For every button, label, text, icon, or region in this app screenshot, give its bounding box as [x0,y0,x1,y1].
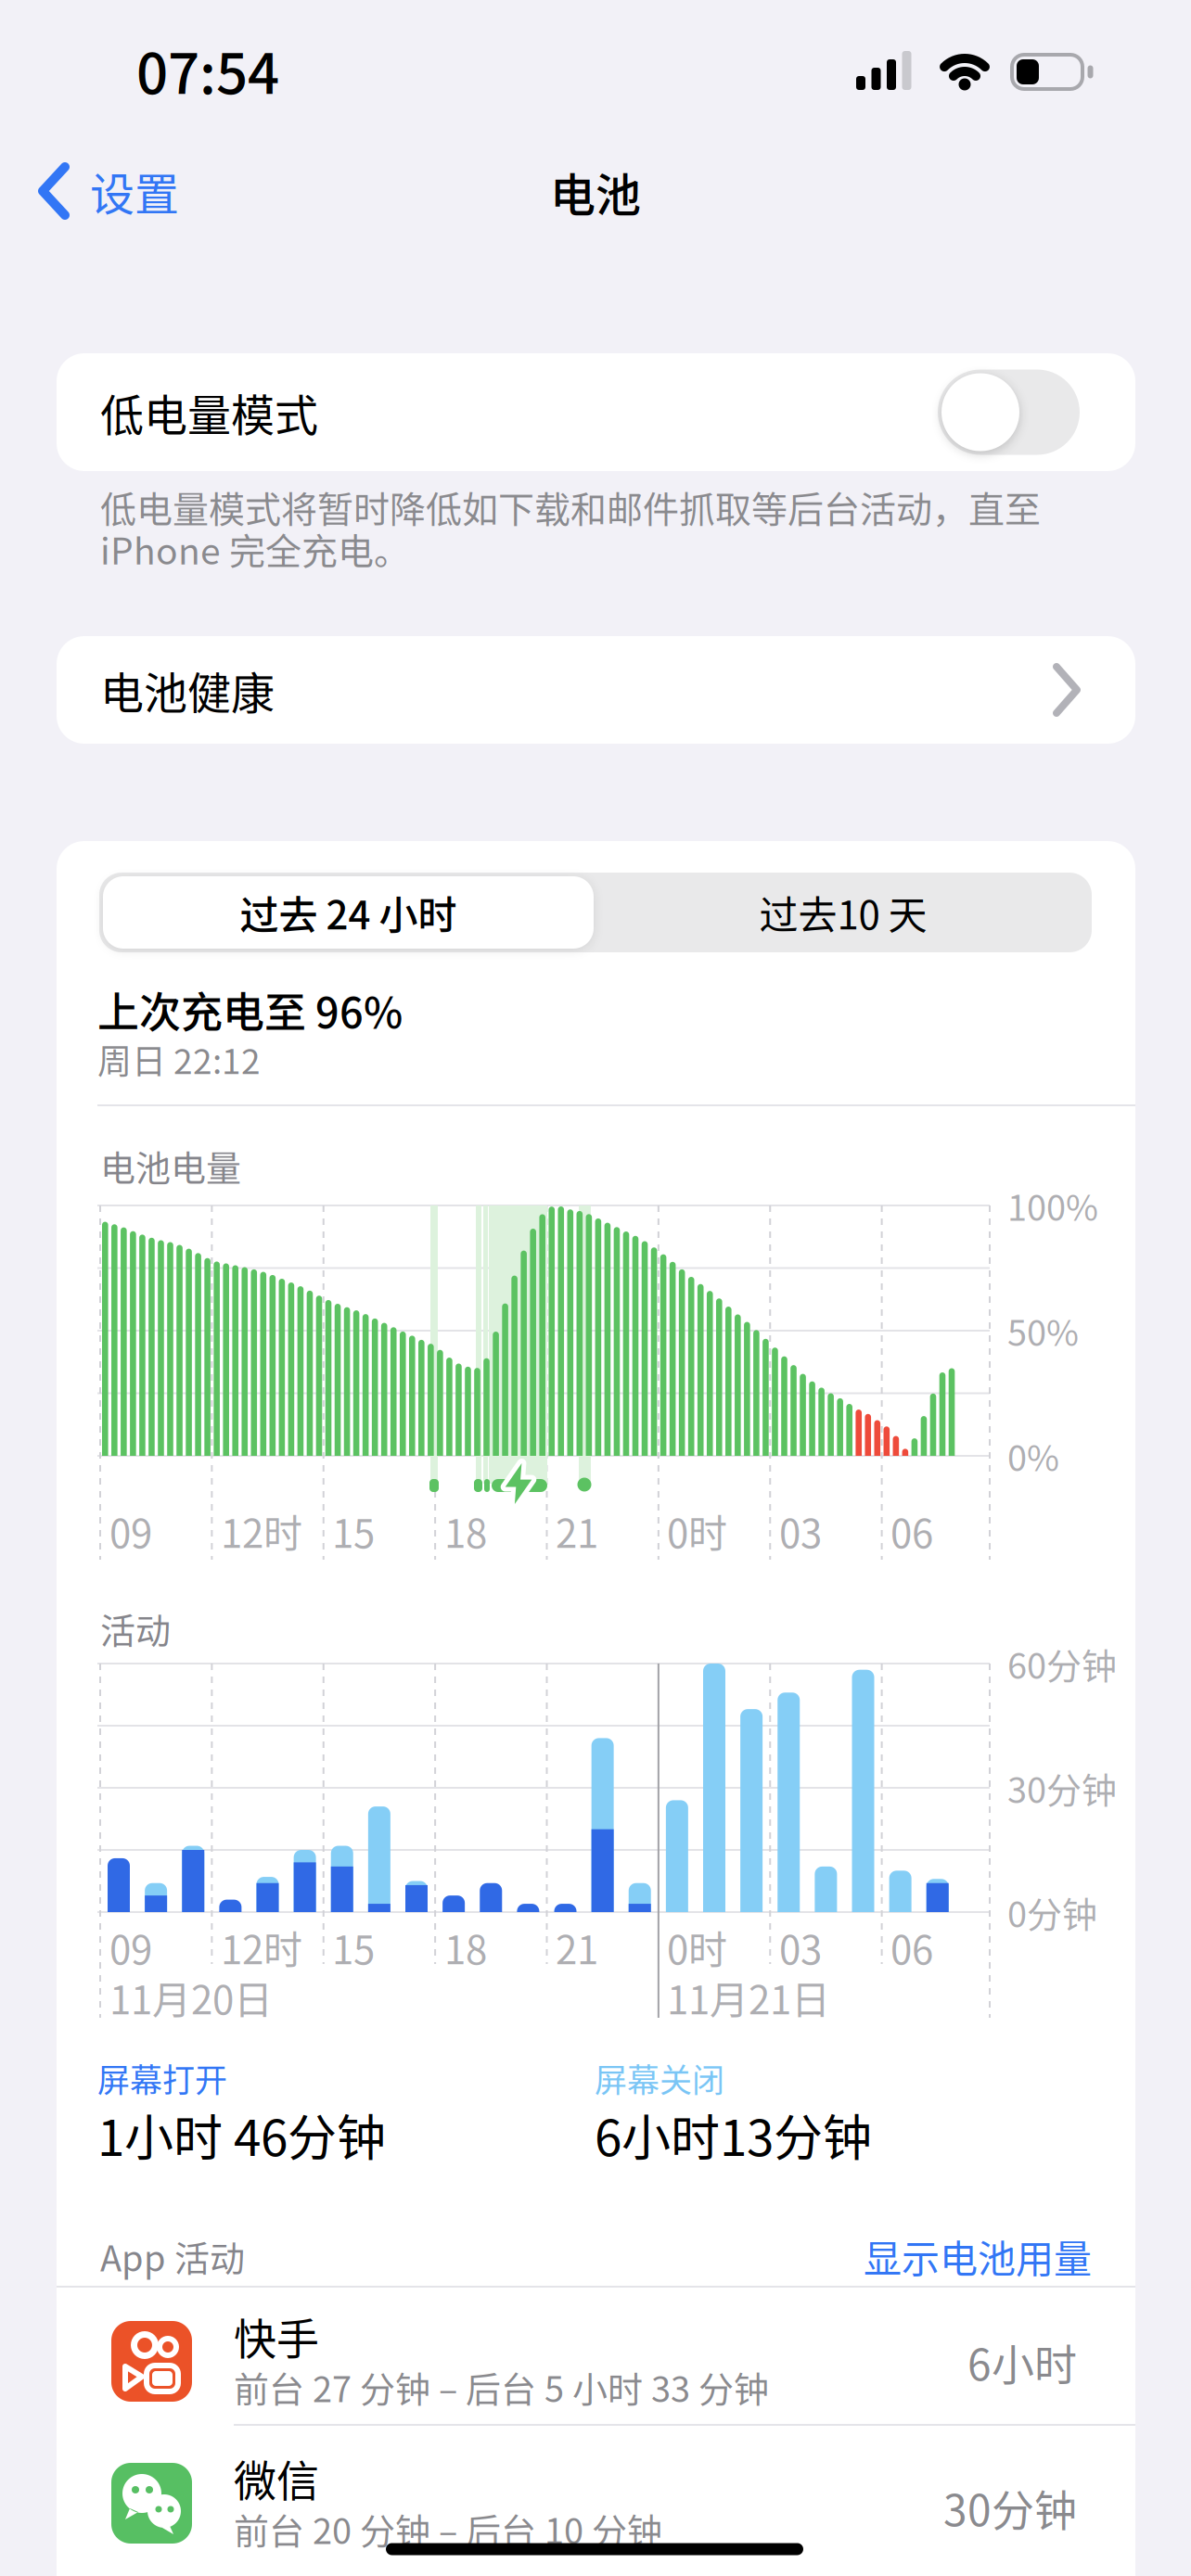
button[interactable]: 过去 24 小时 [103,876,594,949]
staticText: 周日 22:12 [97,1034,261,1084]
button[interactable]: 电池健康 [57,636,1135,744]
staticText: 30分钟 [943,2477,1077,2538]
staticText: 6小时13分钟 [595,2099,872,2170]
staticText: 显示电池用量 [864,2229,1092,2284]
staticText: 快手 [234,2305,319,2367]
staticText: 21 [556,1503,598,1559]
staticText: 09 [109,1919,152,1975]
staticText: 上次充电至 96% [97,980,403,1040]
staticText: 6小时 [967,2331,1077,2393]
staticText: 30分钟 [1007,1762,1117,1813]
button[interactable]: 显示电池用量 [702,2224,1092,2289]
staticText: 0分钟 [1007,1887,1097,1938]
staticText: 低电量模式 [100,381,318,444]
staticText: 活动 [100,1603,171,1654]
staticText: 15 [332,1503,375,1559]
button[interactable]: 返回设置 [38,159,196,223]
staticText: 低电量模式将暂时降低如下载和邮件抓取等后台活动，直至 iPhone 完全充电。 [100,486,1041,570]
staticText: 过去10 天 [759,884,927,941]
staticText: 12时 [221,1919,302,1975]
staticText: 屏幕打开 [97,2055,227,2102]
staticText: 12时 [221,1503,302,1559]
staticText: 11月20日 [109,1969,273,2026]
staticText: 1小时 46分钟 [97,2099,386,2170]
button[interactable]: 快手 [57,2301,1135,2438]
staticText: 07:54 [136,29,279,110]
staticText: 0% [1007,1430,1059,1481]
button[interactable]: 过去10 天 [597,876,1089,949]
button[interactable]: 微信 [57,2441,1135,2576]
staticText: 0时 [667,1503,727,1559]
staticText: 屏幕关闭 [595,2055,724,2102]
staticText: 06 [890,1919,933,1975]
button[interactable]: 低电量模式 [57,353,1135,471]
staticText: 微信 [234,2447,319,2509]
staticText: 电池 [550,159,641,225]
staticText: 09 [109,1503,152,1559]
staticText: 21 [556,1919,598,1975]
staticText: 18 [444,1919,487,1975]
staticText: App 活动 [100,2231,245,2282]
staticText: 15 [332,1919,375,1975]
staticText: 设置 [90,159,179,223]
staticText: 50% [1007,1305,1079,1356]
staticText: 03 [779,1919,822,1975]
staticText: 06 [890,1503,933,1559]
staticText: 18 [444,1503,487,1559]
staticText: 100% [1007,1180,1098,1231]
staticText: 过去 24 小时 [240,884,457,941]
staticText: 11月21日 [667,1969,830,2026]
staticText: 60分钟 [1007,1638,1117,1689]
staticText: 0时 [667,1919,727,1975]
staticText: 电池健康 [100,658,275,722]
staticText: 前台 27 分钟 – 后台 5 小时 33 分钟 [234,2361,769,2412]
staticText: 电池电量 [100,1140,241,1191]
staticText: 03 [779,1503,822,1559]
staticText: 前台 20 分钟 – 后台 10 分钟 [234,2503,662,2554]
